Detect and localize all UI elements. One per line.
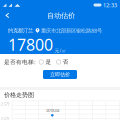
button[interactable]: Back: [2, 10, 13, 21]
staticText: 2018-04: [46, 107, 59, 113]
button[interactable]: 是: [39, 58, 51, 66]
staticText: 是: [45, 58, 51, 66]
staticText: 重庆市北部新区银松路88号: [41, 27, 102, 34]
staticText: 是否有电梯:: [4, 58, 36, 66]
button[interactable]: 立即估价: [43, 70, 77, 79]
button[interactable]: 否: [56, 58, 69, 66]
staticText: 立即估价: [50, 71, 70, 78]
staticText: 2.0万: [0, 116, 9, 120]
staticText: 元/㎡: [55, 47, 67, 54]
staticText: 17800: [8, 34, 53, 55]
staticText: 12:33: [103, 1, 117, 9]
staticText: 否: [63, 58, 69, 66]
staticText: 2.5万: [0, 101, 9, 107]
staticText: 自动估价: [47, 11, 75, 20]
staticText: 约克郡汀兰: [8, 27, 33, 34]
staticText: 价格走势图: [4, 91, 34, 99]
